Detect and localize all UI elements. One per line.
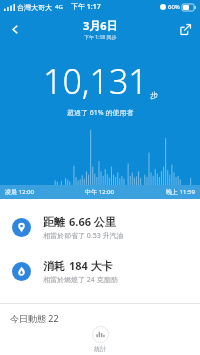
button[interactable]: 消耗 <box>0 249 200 293</box>
staticText: 相當於節省了 0.53 升汽油 <box>43 231 124 241</box>
staticText: 台灣大哥大 <box>17 3 52 12</box>
staticText: 消耗 <box>43 259 65 273</box>
staticText: 超過了 61% 的使用者 <box>67 108 134 118</box>
staticText: 晚上 11:59 <box>166 188 195 196</box>
staticText: 中午 12:00 <box>85 188 114 196</box>
staticText: 凌晨 12:00 <box>5 188 34 196</box>
button[interactable]: 統計 <box>0 324 200 355</box>
staticText: 10,131 <box>43 58 148 104</box>
staticText: 6.66 公里 <box>69 214 116 229</box>
staticText: 下午 1:17 <box>71 2 101 12</box>
staticText: 3月6日 <box>83 18 118 33</box>
staticText: 下午 1:18 同步 <box>84 34 117 41</box>
button[interactable]: Share <box>170 14 200 44</box>
button[interactable]: 距離 <box>0 205 200 249</box>
staticText: 4G <box>55 3 63 11</box>
staticText: 距離 <box>43 215 65 229</box>
button[interactable]: Back <box>0 14 30 44</box>
staticText: 統計 <box>94 345 106 353</box>
staticText: 60% <box>168 3 180 11</box>
staticText: 今日動態 22 <box>10 312 59 324</box>
staticText: 相當於燃燒了 24 克脂肪 <box>43 275 118 285</box>
staticText: 步 <box>150 90 158 100</box>
staticText: 184 大卡 <box>69 258 113 273</box>
